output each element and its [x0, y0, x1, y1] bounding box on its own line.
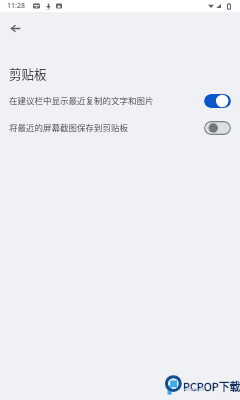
staticText: 剪贴板: [9, 64, 47, 82]
button[interactable]: 将最近的屏幕截图保存到剪贴板: [0, 113, 240, 140]
button[interactable]: Off: [204, 121, 231, 135]
button[interactable]: Back: [5, 18, 25, 38]
staticText: 将最近的屏幕截图保存到剪贴板: [9, 121, 198, 133]
staticText: PCPOP下载: [183, 378, 240, 394]
button[interactable]: On: [204, 94, 231, 108]
staticText: 在建议栏中显示最近复制的文字和图片: [9, 94, 198, 106]
button[interactable]: 在建议栏中显示最近复制的文字和图片: [0, 86, 240, 113]
staticText: PCPOP.COM.CN: [184, 388, 205, 392]
staticText: 11:28: [7, 1, 25, 11]
